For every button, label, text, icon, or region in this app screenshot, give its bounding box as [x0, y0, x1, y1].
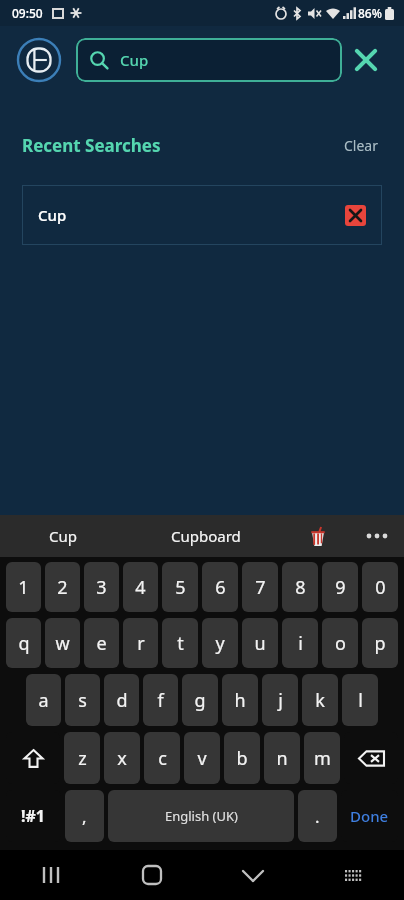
button[interactable]: g	[182, 674, 218, 726]
staticText: Recent Searches	[22, 134, 161, 157]
button[interactable]: n	[264, 732, 300, 784]
staticText: 7	[255, 575, 266, 600]
staticText: Clear	[344, 136, 378, 155]
button[interactable]: 7	[242, 562, 278, 612]
button[interactable]: Recent apps	[0, 850, 101, 900]
staticText: 3	[96, 575, 107, 600]
button[interactable]: .	[298, 790, 337, 842]
staticText: r	[137, 631, 145, 656]
button[interactable]: 5	[162, 562, 198, 612]
staticText: y	[215, 631, 225, 656]
button[interactable]: Done	[341, 790, 398, 842]
button[interactable]: 6	[202, 562, 238, 612]
button[interactable]: 0	[362, 562, 398, 612]
button[interactable]: Hide keyboard	[202, 850, 303, 900]
button[interactable]: x	[104, 732, 140, 784]
staticText: p	[374, 631, 386, 656]
button[interactable]: 1	[6, 562, 41, 612]
button[interactable]: Remove Cup	[345, 205, 366, 226]
staticText: Cupboard	[171, 526, 241, 546]
staticText: 5	[175, 575, 186, 600]
button[interactable]: i	[282, 618, 318, 668]
staticText: 4	[135, 575, 146, 600]
button[interactable]: d	[104, 674, 139, 726]
button[interactable]: z	[64, 732, 100, 784]
button[interactable]: h	[222, 674, 258, 726]
staticText: v	[197, 746, 207, 771]
button[interactable]: 4	[123, 562, 158, 612]
staticText: o	[335, 631, 346, 656]
button[interactable]: Cupboard	[125, 515, 286, 557]
button[interactable]: ,	[65, 790, 104, 842]
button[interactable]: e	[84, 618, 119, 668]
staticText: 8	[295, 575, 306, 600]
button[interactable]: l	[342, 674, 378, 726]
staticText: t	[177, 631, 184, 656]
button[interactable]: a	[26, 674, 61, 726]
button[interactable]: Cup	[22, 185, 382, 245]
button[interactable]: App logo	[14, 35, 64, 85]
button[interactable]: y	[202, 618, 238, 668]
staticText: c	[158, 746, 167, 771]
staticText: Cup	[120, 50, 149, 70]
staticText: x	[117, 746, 127, 771]
button[interactable]: u	[242, 618, 278, 668]
button[interactable]: English (UK)	[108, 790, 294, 842]
staticText: 86%	[358, 5, 382, 21]
staticText: k	[315, 688, 325, 713]
staticText: 2	[57, 575, 68, 600]
button[interactable]: j	[262, 674, 298, 726]
button[interactable]: s	[65, 674, 100, 726]
button[interactable]: 8	[282, 562, 318, 612]
staticText: d	[116, 688, 128, 713]
staticText: z	[78, 746, 87, 771]
button[interactable]: Close search	[342, 36, 390, 84]
staticText: Cup	[38, 205, 67, 225]
staticText: ,	[82, 805, 87, 828]
button[interactable]: Change keyboard	[303, 850, 404, 900]
button[interactable]: Shift	[6, 732, 60, 784]
button[interactable]: m	[304, 732, 340, 784]
button[interactable]: Home	[101, 850, 202, 900]
staticText: 6	[215, 575, 226, 600]
staticText: j	[278, 688, 283, 713]
button[interactable]: !#1	[6, 790, 61, 842]
button[interactable]: Cup	[76, 38, 342, 82]
button[interactable]: r	[123, 618, 158, 668]
staticText: 9	[335, 575, 346, 600]
staticText: 0	[375, 575, 386, 600]
button[interactable]: Emoji suggestion	[286, 515, 350, 557]
staticText: e	[96, 631, 107, 656]
button[interactable]: p	[362, 618, 398, 668]
button[interactable]: More options	[350, 515, 404, 557]
staticText: b	[236, 746, 248, 771]
staticText: s	[78, 688, 87, 713]
staticText: n	[276, 746, 288, 771]
button[interactable]: 9	[322, 562, 358, 612]
button[interactable]: Clear	[340, 132, 382, 159]
button[interactable]: 2	[45, 562, 80, 612]
button[interactable]: o	[322, 618, 358, 668]
staticText: q	[18, 631, 30, 656]
button[interactable]: 3	[84, 562, 119, 612]
staticText: m	[314, 746, 331, 771]
button[interactable]: k	[302, 674, 338, 726]
button[interactable]: c	[144, 732, 180, 784]
button[interactable]: w	[45, 618, 80, 668]
staticText: i	[298, 631, 303, 656]
button[interactable]: v	[184, 732, 220, 784]
staticText: Done	[350, 806, 389, 826]
staticText: !#1	[21, 805, 46, 827]
button[interactable]: Cup	[0, 515, 125, 557]
button[interactable]: f	[143, 674, 178, 726]
button[interactable]: q	[6, 618, 41, 668]
button[interactable]: t	[162, 618, 198, 668]
staticText: a	[38, 688, 49, 713]
staticText: u	[254, 631, 266, 656]
button[interactable]: Backspace	[344, 732, 398, 784]
staticText: Cup	[49, 526, 77, 546]
staticText: 1	[18, 575, 29, 600]
staticText: English (UK)	[165, 807, 238, 825]
button[interactable]: b	[224, 732, 260, 784]
staticText: .	[315, 805, 320, 828]
